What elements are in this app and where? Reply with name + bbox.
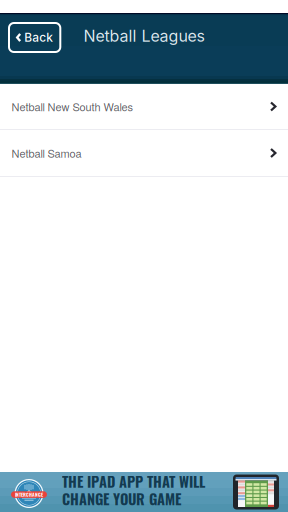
staticText: Netball Samoa bbox=[11, 145, 81, 161]
staticText: CHANGE YOUR GAME bbox=[62, 488, 181, 509]
button[interactable]: Advertisement: The iPad app that will ch… bbox=[0, 472, 288, 512]
button[interactable]: Netball New South Wales bbox=[0, 84, 288, 130]
staticText: Netball New South Wales bbox=[11, 99, 133, 114]
staticText: THE IPAD APP THAT WILL bbox=[62, 471, 205, 492]
button[interactable]: Netball Samoa bbox=[0, 130, 288, 177]
staticText: Netball Leagues bbox=[83, 26, 204, 46]
staticText: Back bbox=[24, 30, 53, 45]
staticText: INTERCHANGE bbox=[15, 491, 43, 498]
button[interactable]: Back bbox=[9, 23, 60, 52]
